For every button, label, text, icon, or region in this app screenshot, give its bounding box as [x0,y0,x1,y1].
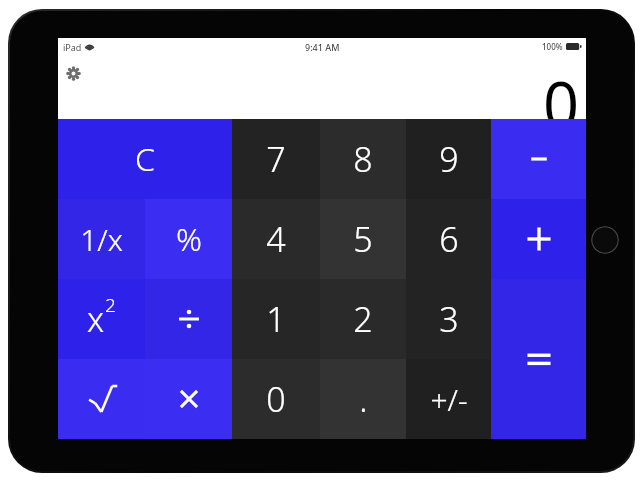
staticText: 3 [439,296,459,342]
button[interactable]: Three [406,279,491,359]
button[interactable]: Multiply [145,359,232,439]
button[interactable]: Plus minus [406,359,491,439]
staticText: 2 [353,296,373,342]
staticText: x [87,296,105,342]
button[interactable]: Settings [62,62,84,84]
button[interactable]: Square root [58,359,145,439]
staticText: 7 [266,136,286,182]
staticText: iPad [63,41,82,53]
staticText: 5 [353,216,373,262]
button[interactable]: One over x [58,199,145,279]
button[interactable]: Minus [491,119,586,199]
staticText: 100% [542,41,563,52]
button[interactable]: Five [320,199,406,279]
staticText: 1/x [80,219,123,260]
staticText: +/- [430,379,468,420]
button[interactable]: x squared [58,279,145,359]
staticText: C [135,137,155,181]
staticText: 4 [266,216,286,262]
button[interactable]: Zero [232,359,320,439]
staticText: 9 [439,136,459,182]
button[interactable]: Percent [145,199,232,279]
button[interactable]: Seven [232,119,320,199]
button[interactable]: Four [232,199,320,279]
staticText: 8 [353,136,373,182]
button[interactable]: Decimal point [320,359,406,439]
staticText: 1 [266,296,286,342]
staticText: 2 [105,292,116,318]
staticText: 0 [542,61,579,125]
staticText: 0 [266,376,286,422]
staticText: 6 [439,216,459,262]
button[interactable]: Divide [145,279,232,359]
button[interactable]: Two [320,279,406,359]
button[interactable]: Eight [320,119,406,199]
button[interactable]: Six [406,199,491,279]
button[interactable]: Equals [491,279,586,439]
staticText: % [176,217,202,261]
button[interactable]: Plus [491,199,586,279]
button[interactable]: One [232,279,320,359]
button[interactable]: Home [591,226,619,254]
button[interactable]: Nine [406,119,491,199]
staticText: 9:41 AM [305,41,340,53]
button[interactable]: Clear [58,119,232,199]
staticText: . [359,376,368,422]
